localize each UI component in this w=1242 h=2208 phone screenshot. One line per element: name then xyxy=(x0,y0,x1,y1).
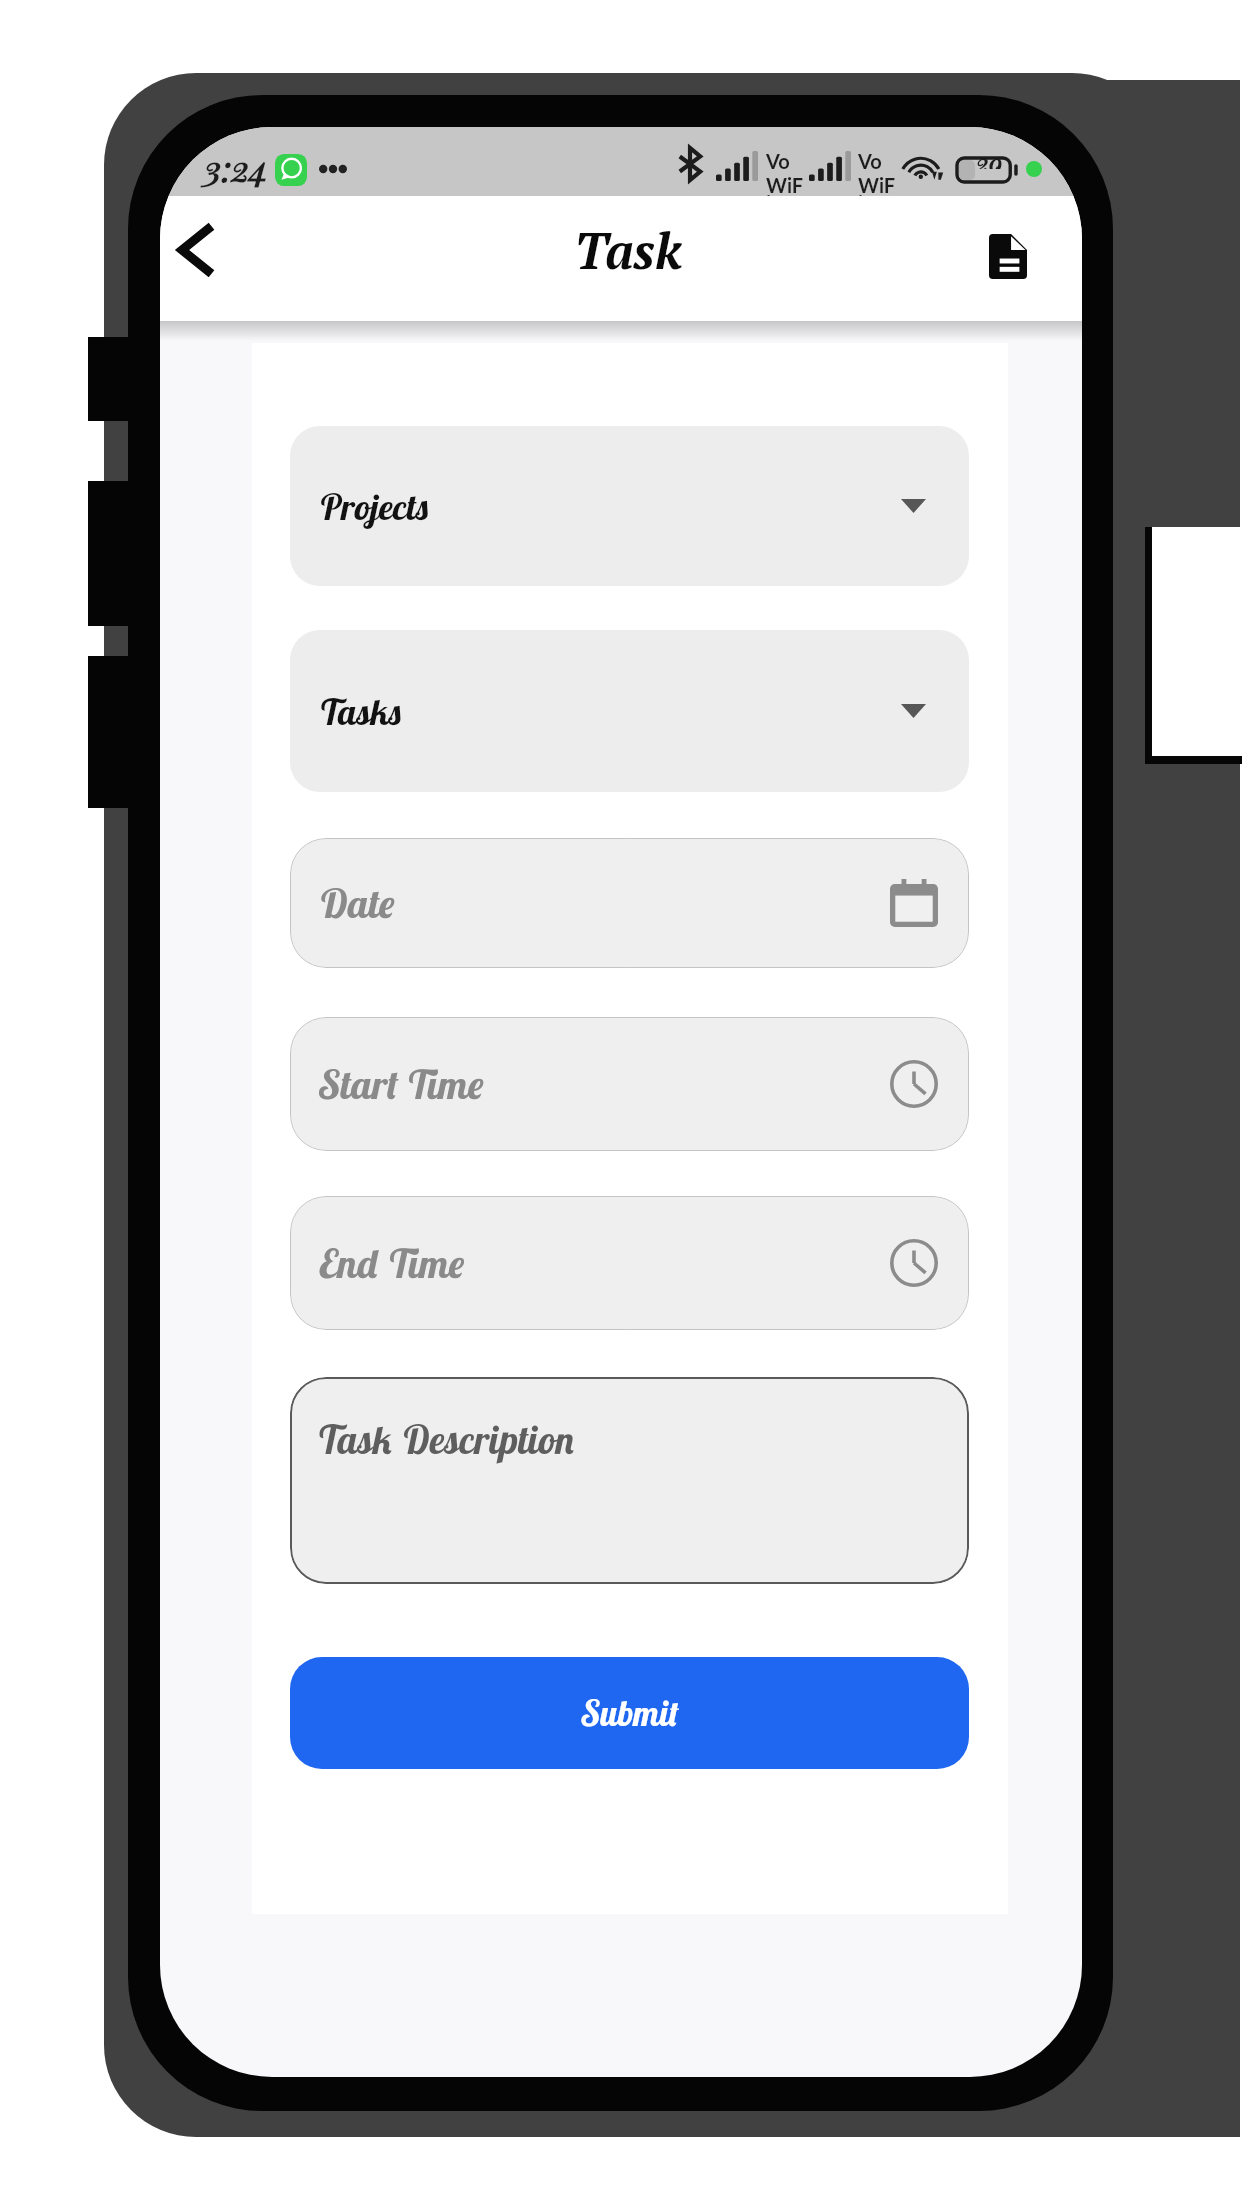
staticText: 29 xyxy=(976,145,1003,169)
staticText: Start Time xyxy=(319,1059,484,1109)
button[interactable]: Tasks xyxy=(290,630,969,792)
staticText: WiFi xyxy=(858,173,900,215)
button[interactable]: Date xyxy=(290,838,969,968)
button[interactable]: Projects xyxy=(290,426,969,586)
staticText: Tasks xyxy=(319,689,403,734)
button[interactable]: Back xyxy=(160,210,235,290)
staticText: End Time xyxy=(319,1238,465,1288)
button[interactable]: Submit xyxy=(290,1657,969,1769)
staticText: Task Description xyxy=(317,1415,576,1464)
staticText: Vo xyxy=(766,149,790,173)
staticText: Projects xyxy=(319,484,430,529)
button[interactable]: Task Description xyxy=(290,1377,969,1584)
button[interactable]: Notes xyxy=(968,216,1048,296)
staticText: Submit xyxy=(581,1691,679,1735)
button[interactable]: Start Time xyxy=(290,1017,969,1151)
staticText: Date xyxy=(319,878,395,928)
staticText: Task xyxy=(574,217,682,283)
button[interactable]: End Time xyxy=(290,1196,969,1330)
staticText: 3:24 xyxy=(204,143,269,191)
staticText: Vo xyxy=(858,149,882,173)
staticText: WiFi xyxy=(766,173,808,215)
